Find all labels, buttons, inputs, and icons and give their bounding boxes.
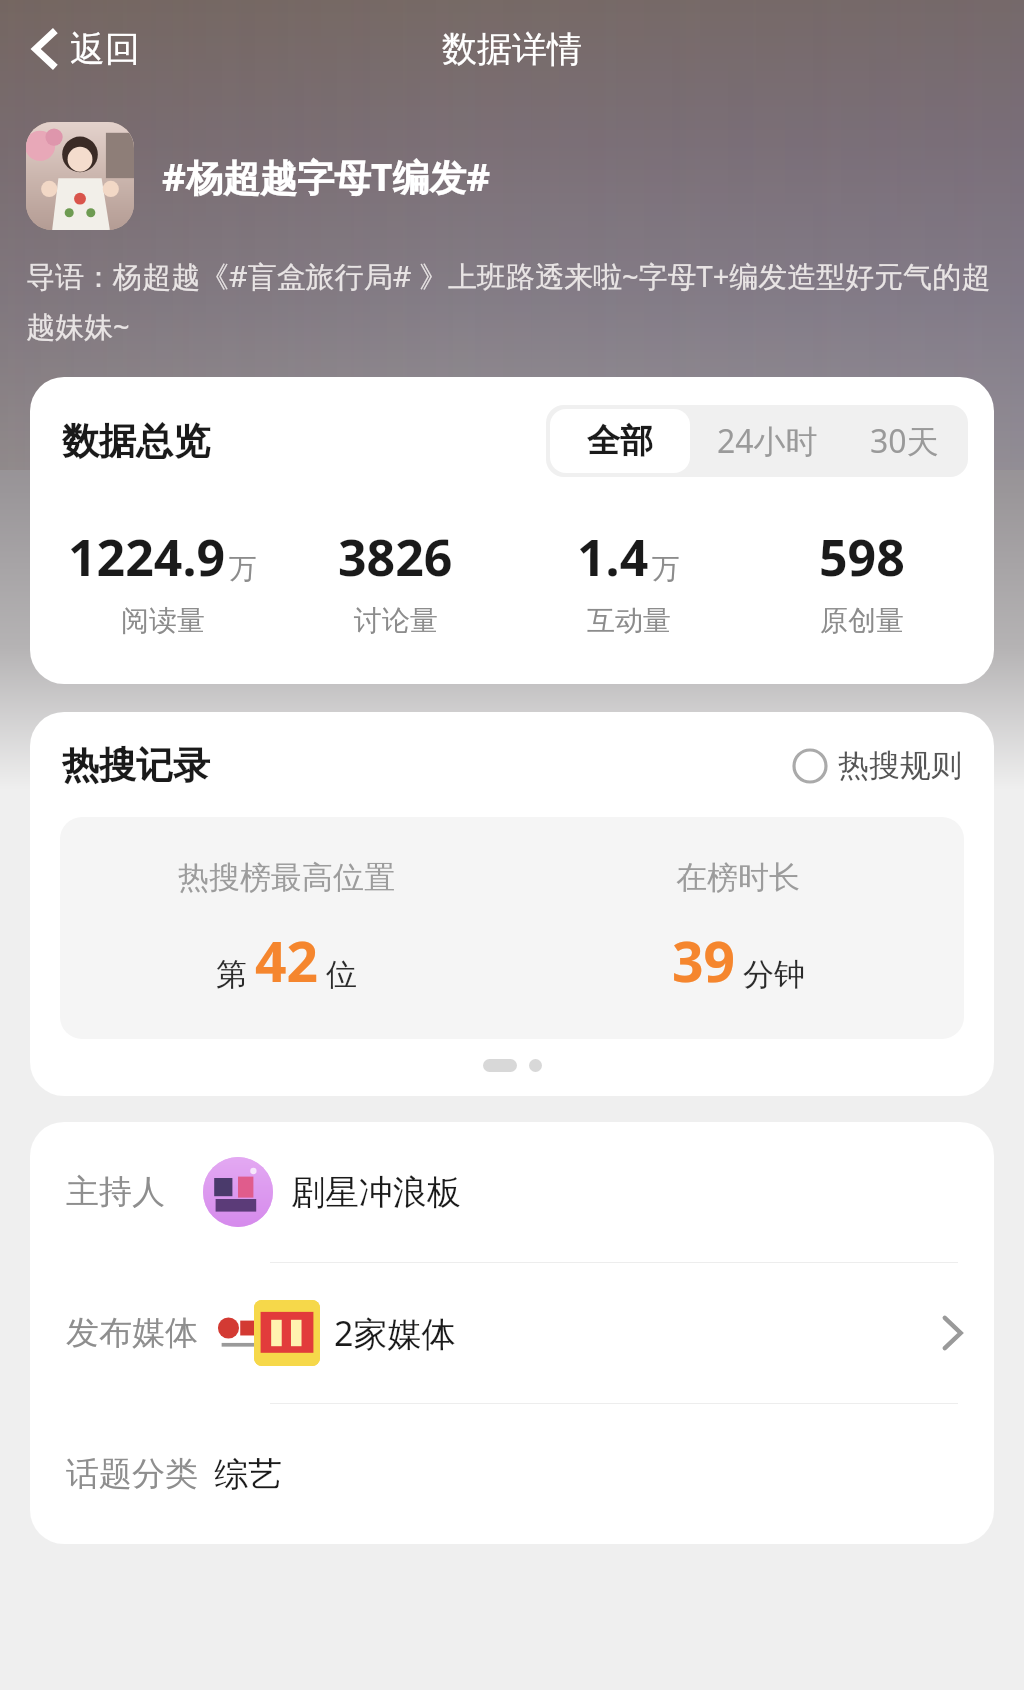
staticText: 数据总览 xyxy=(62,418,210,465)
staticText: 话题分类 xyxy=(66,1453,198,1495)
staticText: 阅读量 xyxy=(121,603,205,638)
staticText: 30天 xyxy=(870,419,939,463)
staticText: 在榜时长 xyxy=(676,858,800,897)
staticText: 2家媒体 xyxy=(334,1310,456,1356)
button[interactable]: 30天 xyxy=(840,405,968,477)
staticText: 返回 xyxy=(70,27,140,71)
button[interactable]: 主持人 xyxy=(30,1122,994,1262)
staticText: 互动量 xyxy=(587,603,671,638)
staticText: 598 xyxy=(819,523,905,591)
staticText: 24小时 xyxy=(717,419,818,463)
staticText: 42 xyxy=(255,923,318,998)
button[interactable]: 24小时 xyxy=(694,405,840,477)
staticText: 剧星冲浪板 xyxy=(291,1171,461,1214)
staticText: #杨超越字母T编发# xyxy=(162,151,491,202)
button[interactable]: 话题头像 xyxy=(26,122,134,230)
other: 查看媒体 xyxy=(940,1313,964,1353)
button[interactable]: 598 xyxy=(745,523,978,638)
button[interactable]: 话题分类 xyxy=(30,1404,994,1544)
staticText: 原创量 xyxy=(820,603,904,638)
staticText: 全部 xyxy=(587,420,653,462)
staticText: 导语：杨超越《#盲盒旅行局# 》上班路透来啦~字母T+编发造型好元气的超越妹妹~ xyxy=(26,256,1002,345)
staticText: 万 xyxy=(652,551,680,586)
button[interactable]: 热搜规则 xyxy=(788,742,966,789)
staticText: 数据详情 xyxy=(442,27,582,71)
button[interactable]: 1.4 xyxy=(512,523,745,638)
staticText: 位 xyxy=(326,955,357,994)
staticText: 第 xyxy=(216,955,247,994)
staticText: 39 xyxy=(672,923,735,998)
button[interactable]: 发布媒体 xyxy=(30,1263,994,1403)
button[interactable]: 热搜榜最高位置 xyxy=(60,817,964,1039)
staticText: 主持人 xyxy=(66,1171,165,1213)
staticText: 热搜记录 xyxy=(62,742,210,789)
staticText: 1224.9 xyxy=(68,523,226,591)
staticText: 综艺 xyxy=(214,1453,282,1496)
button[interactable]: 1224.9 xyxy=(46,523,279,638)
staticText: 讨论量 xyxy=(354,603,438,638)
staticText: 分钟 xyxy=(743,955,805,994)
staticText: 热搜规则 xyxy=(838,746,962,785)
button[interactable]: 全部 xyxy=(550,409,690,473)
button[interactable]: 3826 xyxy=(279,523,512,638)
staticText: 万 xyxy=(229,551,257,586)
staticText: 发布媒体 xyxy=(66,1312,198,1354)
staticText: 1.4 xyxy=(577,523,649,591)
staticText: 热搜榜最高位置 xyxy=(178,858,395,897)
staticText: 3826 xyxy=(338,523,453,591)
button[interactable]: 返回 xyxy=(22,19,150,79)
